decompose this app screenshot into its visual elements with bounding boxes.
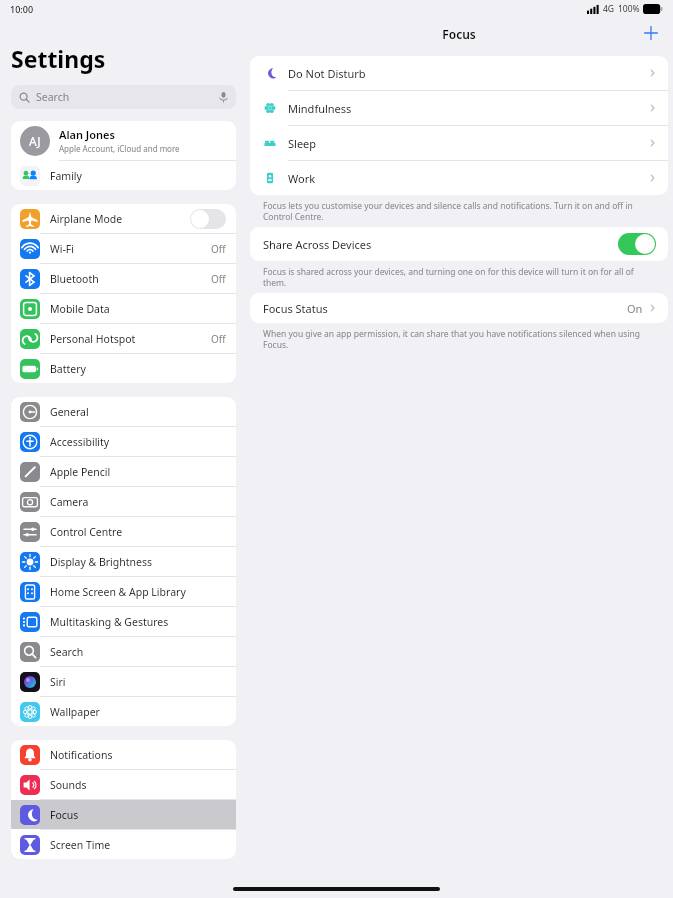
staticText: Focus [245,26,673,42]
staticText: Sounds [50,778,226,792]
button[interactable]: Mindfulness [250,91,668,125]
button[interactable]: Siri [11,667,236,696]
button[interactable]: Mobile Data [11,294,236,323]
staticText: Search [50,645,226,659]
button[interactable]: Focus Status [250,293,668,323]
staticText: Battery [50,362,226,376]
staticText: When you give an app permission, it can … [263,328,648,350]
staticText: Apple Pencil [50,465,226,479]
staticText: Off [211,272,226,286]
staticText: Multitasking & Gestures [50,615,226,629]
button[interactable]: Search [11,637,236,666]
staticText: Siri [50,675,226,689]
staticText: Mobile Data [50,302,226,316]
staticText: AJ [29,133,41,149]
button[interactable]: Apple Pencil [11,457,236,486]
staticText: Sleep [288,136,649,151]
staticText: Mindfulness [288,101,649,116]
button[interactable]: Screen Time [11,830,236,859]
staticText: Wi-Fi [50,242,211,256]
staticText: On [627,301,643,316]
button[interactable]: Control Centre [11,517,236,546]
staticText: 4G [603,3,615,15]
button[interactable]: Wi-Fi [11,234,236,263]
other: Dictate [219,91,228,103]
button[interactable]: Home Screen & App Library [11,577,236,606]
staticText: Airplane Mode [50,212,190,226]
staticText: Notifications [50,748,226,762]
staticText: Bluetooth [50,272,211,286]
staticText: Work [288,171,649,186]
button[interactable]: Battery [11,354,236,383]
staticText: Apple Account, iCloud and more [59,143,180,154]
button[interactable]: Display & Brightness [11,547,236,576]
button[interactable]: Camera [11,487,236,516]
staticText: Alan Jones [59,127,115,142]
staticText: Off [211,332,226,346]
button[interactable]: AJ [11,121,236,160]
button[interactable]: Work [250,161,668,195]
button[interactable]: Airplane Mode [11,204,236,233]
button[interactable]: Family [11,161,236,190]
staticText: Wallpaper [50,705,226,719]
button[interactable]: Wallpaper [11,697,236,726]
button[interactable]: Personal Hotspot [11,324,236,353]
staticText: Focus is shared across your devices, and… [263,266,648,288]
button[interactable]: Sounds [11,770,236,799]
staticText: 10:00 [10,3,34,15]
button[interactable]: Multitasking & Gestures [11,607,236,636]
staticText: Home Screen & App Library [50,585,226,599]
button[interactable]: Focus [11,800,236,829]
staticText: Focus lets you customise your devices an… [263,200,648,222]
staticText: Control Centre [50,525,226,539]
staticText: Display & Brightness [50,555,226,569]
button[interactable]: General [11,397,236,426]
staticText: Share Across Devices [263,237,618,252]
staticText: Settings [11,43,106,74]
button[interactable]: Add Focus [639,21,663,45]
staticText: Camera [50,495,226,509]
staticText: 100% [618,3,640,15]
staticText: Off [211,242,226,256]
staticText: General [50,405,226,419]
button[interactable]: Accessibility [11,427,236,456]
button[interactable]: Bluetooth [11,264,236,293]
button[interactable]: Notifications [11,740,236,769]
staticText: Do Not Disturb [288,66,649,81]
button[interactable]: Do Not Disturb [250,56,668,90]
staticText: Family [50,169,226,183]
staticText: Personal Hotspot [50,332,211,346]
button[interactable]: Sleep [250,126,668,160]
staticText: Focus [50,808,226,822]
button[interactable]: Share Across Devices [250,227,668,261]
staticText: Search [36,90,219,104]
staticText: Focus Status [263,301,627,316]
button[interactable]: Search [11,85,236,109]
staticText: Accessibility [50,435,226,449]
staticText: Screen Time [50,838,226,852]
